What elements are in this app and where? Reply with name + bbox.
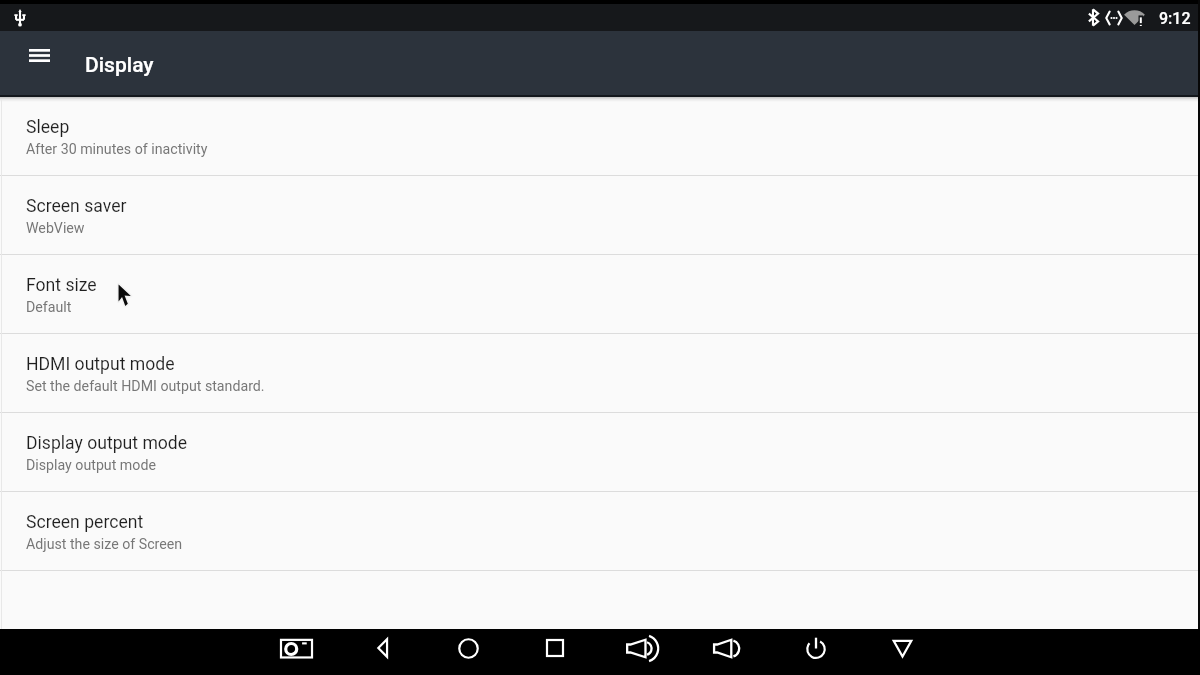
staticText: Screen saver xyxy=(26,196,127,217)
other: USB connected xyxy=(14,9,26,27)
button[interactable]: Home xyxy=(446,629,490,675)
staticText: 9:12 xyxy=(1159,9,1191,28)
button[interactable]: Open navigation menu xyxy=(17,33,61,77)
staticText: Font size xyxy=(26,275,97,296)
button[interactable]: HDMI output mode xyxy=(0,334,1200,413)
staticText: WebView xyxy=(26,220,85,237)
button[interactable]: Screen saver xyxy=(0,176,1200,255)
staticText: HDMI output mode xyxy=(26,354,175,375)
staticText: After 30 minutes of inactivity xyxy=(26,141,208,158)
button[interactable]: Power xyxy=(794,629,838,675)
button[interactable]: Hide navigation bar xyxy=(880,629,924,675)
staticText: Screen percent xyxy=(26,512,144,533)
button[interactable]: Sleep xyxy=(0,97,1200,176)
staticText: Default xyxy=(26,299,72,316)
button[interactable]: Recents xyxy=(533,629,577,675)
button[interactable]: Screen percent xyxy=(0,492,1200,571)
button[interactable]: Screenshot xyxy=(274,629,318,675)
button[interactable]: Back xyxy=(360,629,404,675)
button[interactable]: Display output mode xyxy=(0,413,1200,492)
button[interactable]: Volume up xyxy=(620,629,664,675)
button[interactable]: Font size xyxy=(0,255,1200,334)
staticText: Sleep xyxy=(26,117,70,138)
staticText: Display output mode xyxy=(26,457,156,474)
staticText: Display output mode xyxy=(26,433,188,454)
button[interactable]: Volume down xyxy=(706,629,750,675)
staticText: Set the default HDMI output standard. xyxy=(26,378,265,395)
staticText: Adjust the size of Screen xyxy=(26,536,183,553)
staticText: Display xyxy=(85,53,154,78)
